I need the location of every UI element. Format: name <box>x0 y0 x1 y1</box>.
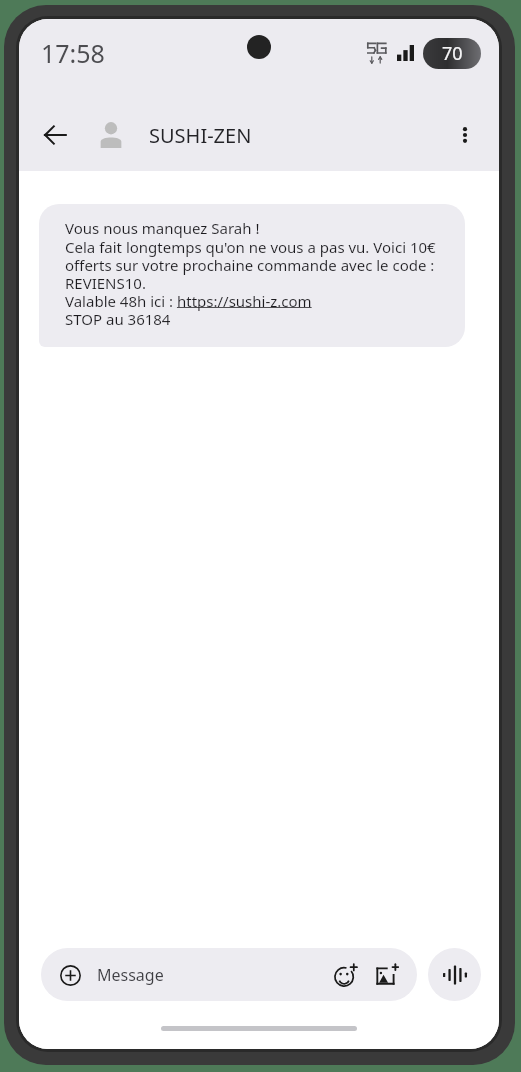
staticText: Vous nous manquez Sarah ! Cela fait long… <box>65 218 445 329</box>
staticText: 17:58 <box>41 36 105 70</box>
button[interactable]: Add attachment <box>41 948 417 1001</box>
staticText: SUSHI-ZEN <box>149 122 252 149</box>
button[interactable]: Contact avatar <box>89 113 133 157</box>
button[interactable]: Vous nous manquez Sarah ! Cela fait long… <box>39 204 465 347</box>
button[interactable]: More options <box>445 115 485 155</box>
button[interactable]: Add attachment <box>55 960 85 990</box>
button[interactable]: Battery 70 percent <box>423 38 481 69</box>
staticText: Message <box>97 964 164 986</box>
button[interactable]: Back <box>33 113 77 157</box>
button[interactable]: Record voice message <box>428 948 481 1001</box>
button[interactable]: Attach image <box>371 959 403 991</box>
button[interactable]: Emoji <box>329 959 361 991</box>
staticText: 70 <box>442 41 463 66</box>
